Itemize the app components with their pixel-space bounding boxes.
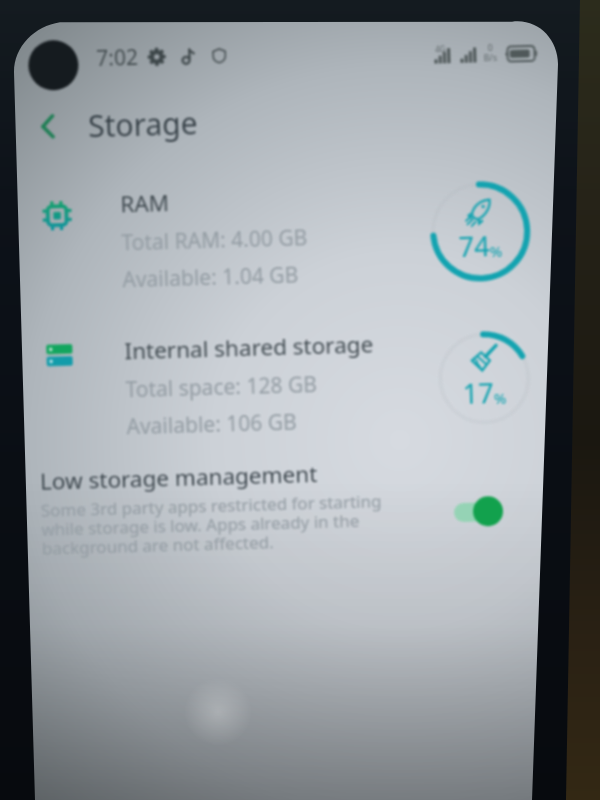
- staticText: 74: [458, 227, 490, 265]
- staticText: Total RAM: 4.00 GB: [121, 223, 308, 257]
- staticText: 0 B/s: [483, 41, 497, 63]
- staticText: 17: [462, 374, 494, 412]
- staticText: RAM: [120, 187, 170, 219]
- button[interactable]: RAM: [14, 177, 545, 297]
- staticText: Some 3rd party apps restricted for start…: [40, 489, 383, 560]
- staticText: Available: 106 GB: [126, 408, 298, 441]
- staticText: %: [494, 388, 507, 408]
- staticText: Available: 1.04 GB: [122, 260, 299, 294]
- button[interactable]: Back: [11, 91, 541, 157]
- staticText: 4G: [435, 43, 446, 55]
- staticText: 7:02: [96, 43, 139, 73]
- staticText: Storage: [87, 102, 199, 146]
- button[interactable]: Low storage management toggle: [454, 495, 506, 528]
- button[interactable]: Internal shared storage: [18, 324, 549, 444]
- button[interactable]: Back: [32, 110, 65, 143]
- staticText: Internal shared storage: [124, 328, 374, 366]
- staticText: %: [489, 241, 503, 261]
- staticText: Total space: 128 GB: [125, 370, 318, 404]
- staticText: Low storage management: [40, 458, 318, 497]
- button[interactable]: Low storage management: [22, 452, 552, 560]
